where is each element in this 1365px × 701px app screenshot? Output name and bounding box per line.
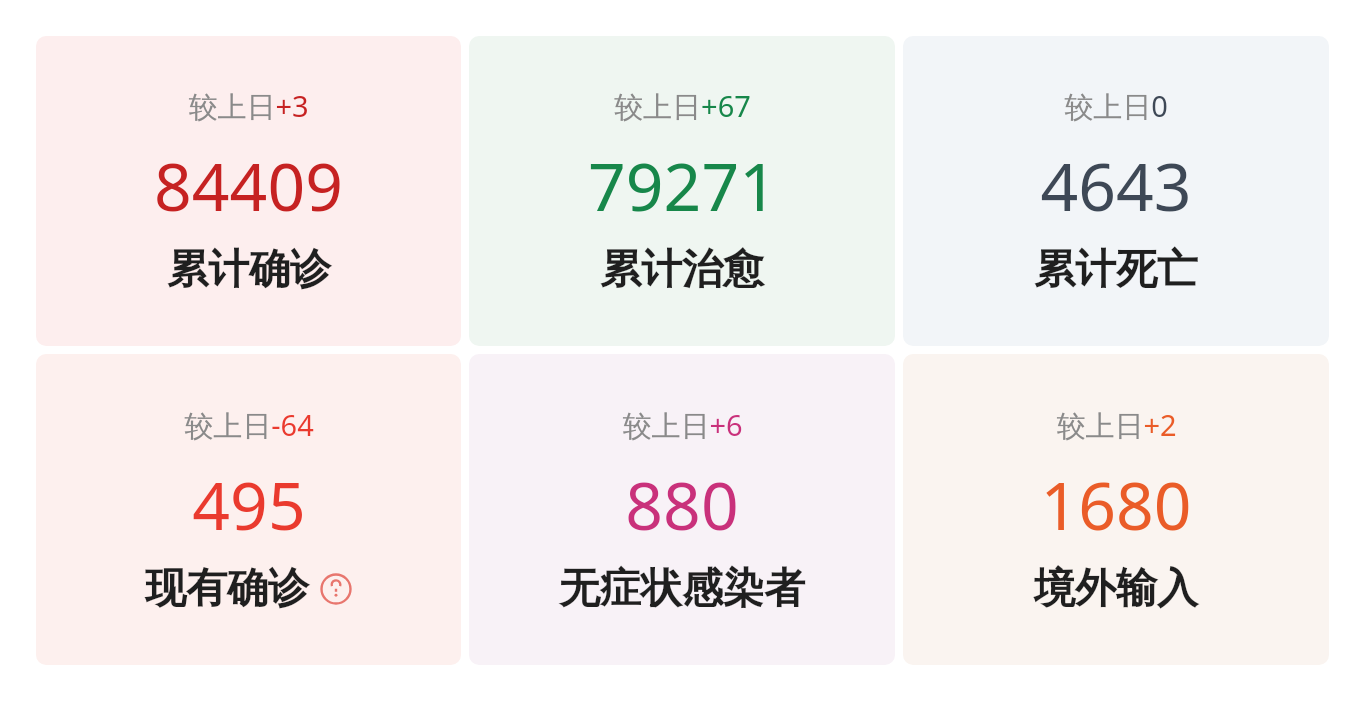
button[interactable]: 较上日+2 — [903, 354, 1329, 665]
staticText: 79271 — [588, 140, 777, 230]
staticText: 累计死亡 — [1034, 244, 1198, 296]
staticText: 累计确诊 — [167, 244, 331, 296]
staticText: 较上日+2 — [1056, 405, 1177, 445]
button[interactable]: 较上日0 — [903, 36, 1329, 346]
staticText: 较上日+3 — [188, 86, 309, 126]
button[interactable]: 较上日+6 — [469, 354, 895, 665]
staticText: 4643 — [1040, 140, 1192, 230]
staticText: 无症状感染者 — [559, 563, 805, 615]
staticText: 境外输入 — [1034, 563, 1198, 615]
button[interactable]: 较上日+67 — [469, 36, 895, 346]
staticText: 495 — [192, 459, 306, 549]
staticText: 880 — [625, 459, 739, 549]
staticText: 较上日0 — [1064, 86, 1168, 126]
staticText: 较上日+6 — [622, 405, 743, 445]
button[interactable]: 较上日-64 — [36, 354, 461, 665]
staticText: 累计治愈 — [600, 244, 764, 296]
staticText: 1680 — [1040, 459, 1192, 549]
staticText: 现有确诊 — [145, 563, 309, 615]
button[interactable]: 帮助说明 — [319, 572, 353, 606]
staticText: 较上日-64 — [184, 405, 314, 445]
button[interactable]: 较上日+3 — [36, 36, 461, 346]
staticText: 84409 — [154, 140, 343, 230]
staticText: 较上日+67 — [614, 86, 751, 126]
